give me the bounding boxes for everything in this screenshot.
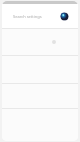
other: More bbox=[52, 40, 56, 44]
button[interactable]: Search settings bbox=[2, 4, 78, 28]
button[interactable]: Account bbox=[60, 12, 69, 21]
staticText: Search settings bbox=[13, 14, 58, 19]
